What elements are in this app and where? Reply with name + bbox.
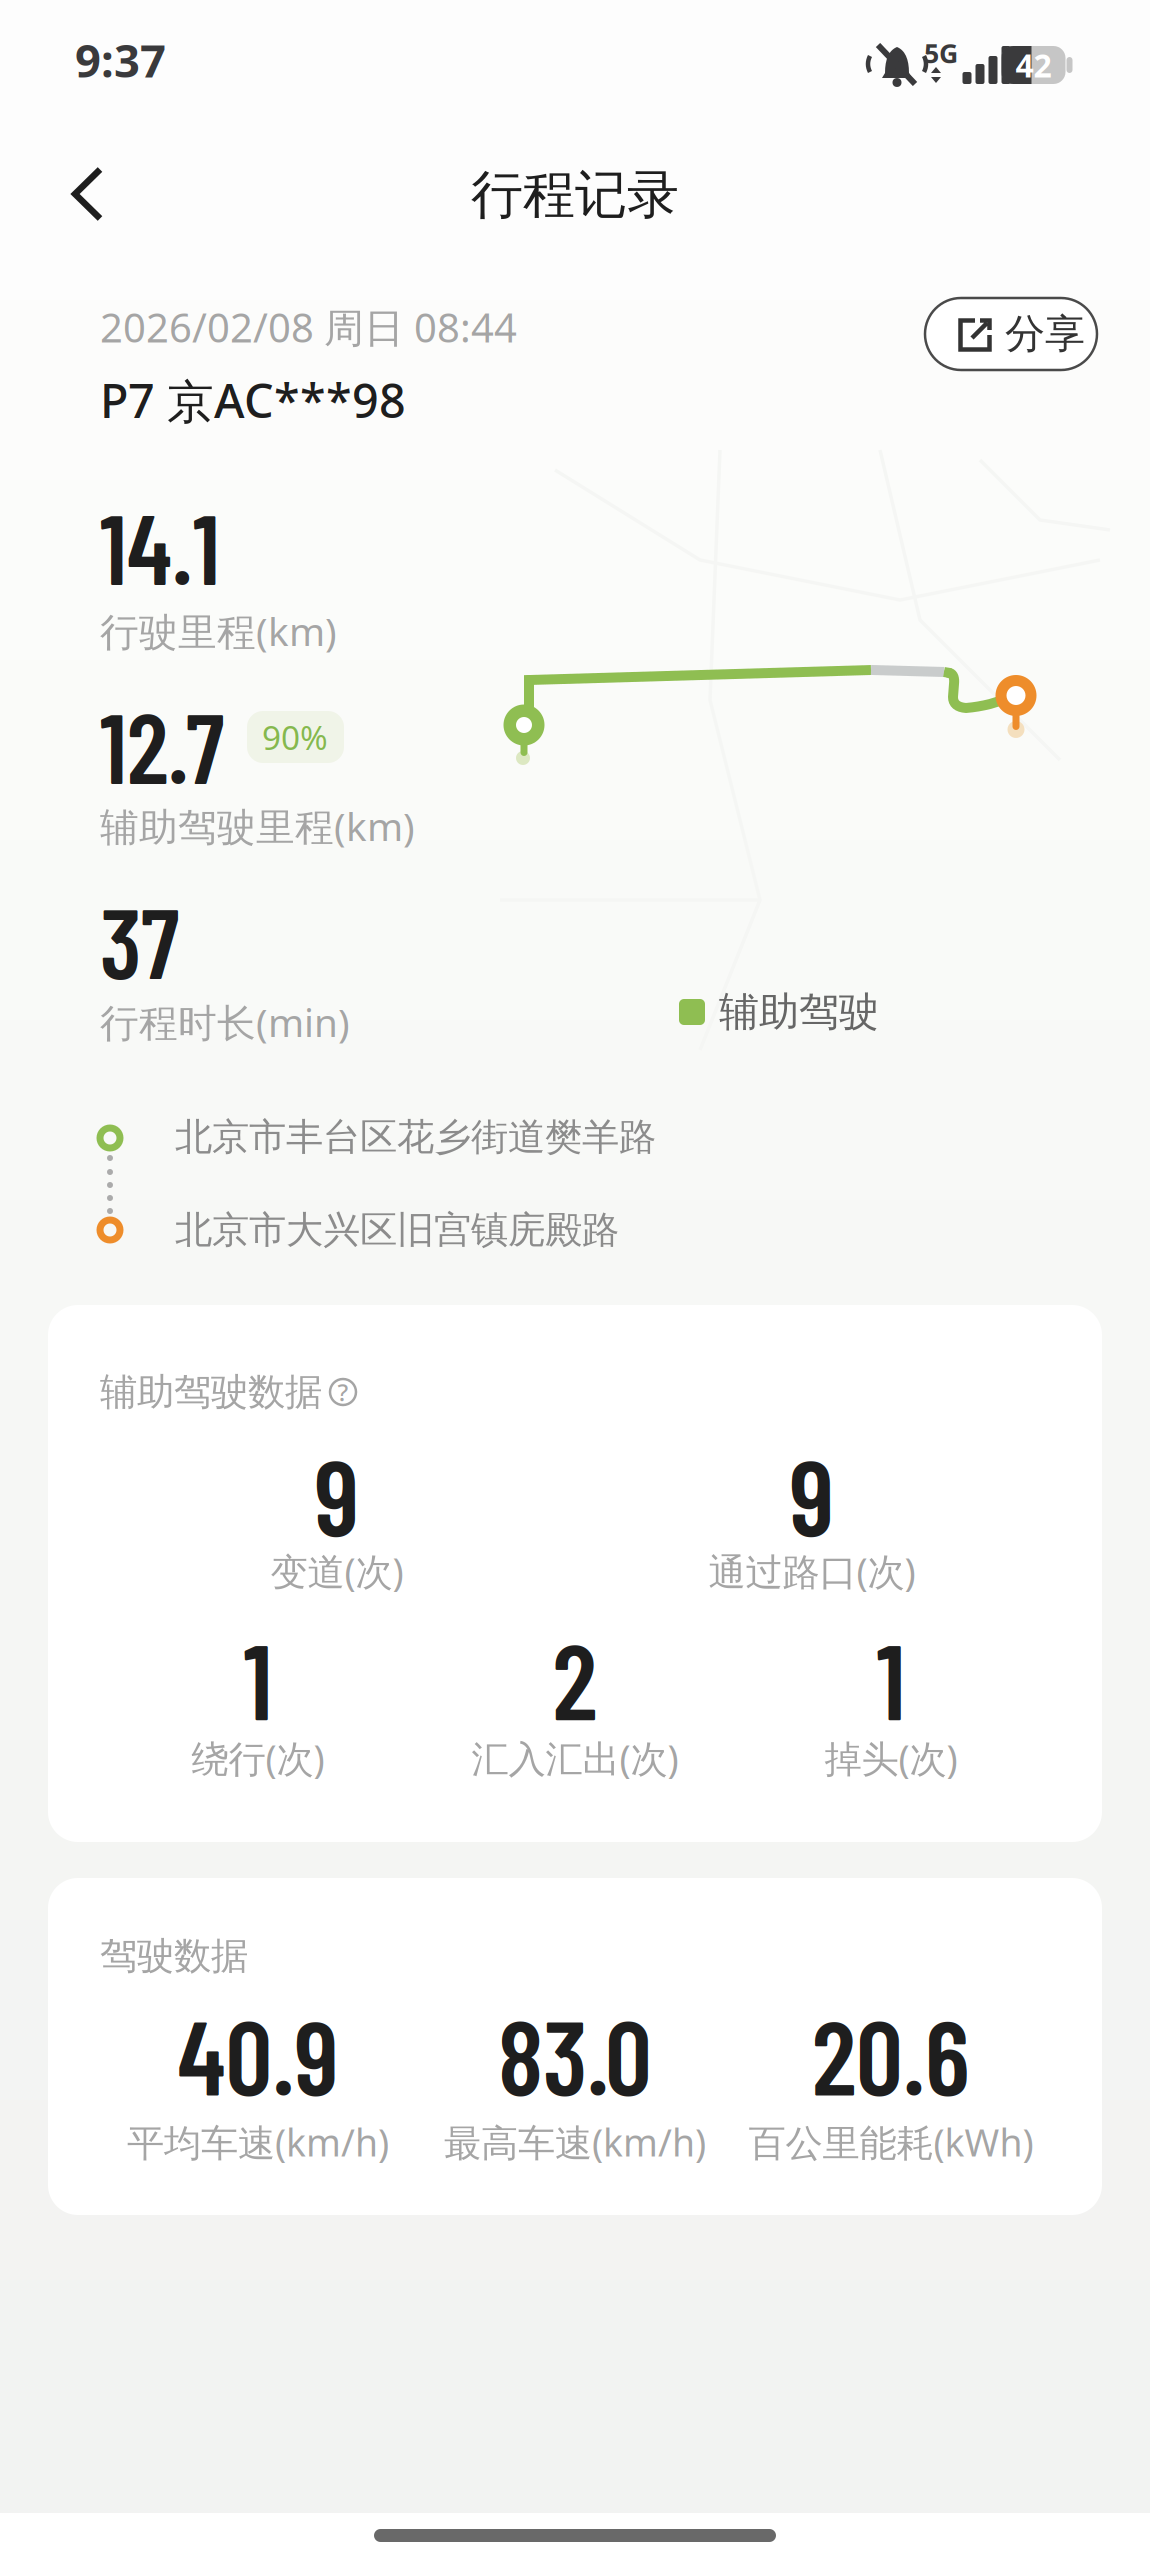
- staticText: 83.0: [498, 1992, 652, 2116]
- button[interactable]: Help: [330, 1379, 356, 1405]
- button[interactable]: Back: [72, 166, 104, 221]
- staticText: 90%: [262, 715, 328, 759]
- staticText: 驾驶数据: [100, 1933, 248, 1979]
- staticText: 1: [876, 1615, 905, 1741]
- staticText: 2: [552, 1615, 597, 1741]
- staticText: 平均车速(km/h): [127, 2117, 389, 2167]
- staticText: 9:37: [75, 30, 166, 90]
- staticText: 9: [789, 1431, 834, 1557]
- staticText: 12.7: [100, 687, 224, 803]
- staticText: P7 京AC***98: [100, 369, 406, 431]
- staticText: 行程记录: [471, 163, 679, 227]
- staticText: 1: [243, 1615, 272, 1741]
- staticText: 40.9: [177, 1992, 338, 2116]
- staticText: 百公里能耗(kWh): [748, 2117, 1033, 2167]
- staticText: 42: [1015, 44, 1051, 86]
- staticText: 北京市大兴区旧宫镇庑殿路: [175, 1207, 619, 1253]
- staticText: 37: [100, 882, 179, 998]
- staticText: 掉头(次): [824, 1733, 957, 1783]
- staticText: 分享: [1005, 309, 1085, 358]
- staticText: 14.1: [100, 488, 220, 604]
- staticText: 9: [314, 1431, 359, 1557]
- staticText: 2026/02/08 周日 08:44: [100, 300, 517, 353]
- staticText: 绕行(次): [191, 1733, 324, 1783]
- staticText: 20.6: [812, 1992, 970, 2116]
- staticText: 行程时长(min): [100, 996, 350, 1048]
- staticText: 辅助驾驶里程(km): [100, 800, 415, 852]
- staticText: 北京市丰台区花乡街道樊羊路: [175, 1114, 656, 1160]
- staticText: 行驶里程(km): [100, 605, 337, 657]
- staticText: ?: [337, 1376, 348, 1408]
- button[interactable]: 分享: [925, 298, 1097, 370]
- staticText: 最高车速(km/h): [444, 2117, 706, 2167]
- staticText: 通过路口(次): [708, 1546, 915, 1596]
- staticText: 辅助驾驶数据: [100, 1369, 322, 1415]
- staticText: 5G: [924, 35, 958, 71]
- staticText: 变道(次): [270, 1546, 403, 1596]
- staticText: 辅助驾驶: [719, 987, 879, 1036]
- staticText: 汇入汇出(次): [471, 1733, 678, 1783]
